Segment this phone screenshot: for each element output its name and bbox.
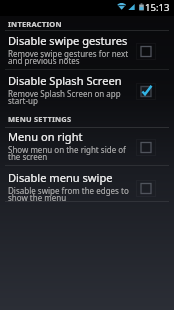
staticText: MENU SETTINGS	[8, 114, 72, 124]
staticText: Remove Splash Screen on app start-up	[8, 88, 121, 107]
staticText: INTERACTION	[8, 19, 62, 29]
button[interactable]: Menu on right	[0, 123, 174, 167]
button[interactable]: Disable menu swipe	[0, 164, 174, 208]
staticText: Remove swipe gestures for next and previ…	[8, 48, 129, 67]
staticText: 15:13	[145, 1, 170, 14]
button[interactable]: Checked	[133, 79, 158, 103]
button[interactable]: Unchecked	[133, 176, 158, 200]
staticText: Menu on right	[8, 129, 83, 144]
button[interactable]: Disable swipe gestures	[0, 27, 174, 71]
staticText: Show menu on the right side of the scree…	[8, 144, 126, 163]
staticText: Disable Splash Screen	[8, 73, 122, 88]
staticText: Disable swipe from the edges to show the…	[8, 185, 129, 204]
staticText: Disable swipe gestures	[8, 33, 128, 48]
button[interactable]: Disable Splash Screen	[0, 67, 174, 111]
button[interactable]: Unchecked	[133, 39, 158, 63]
button[interactable]: Unchecked	[133, 135, 158, 159]
staticText: Disable menu swipe	[8, 170, 113, 185]
